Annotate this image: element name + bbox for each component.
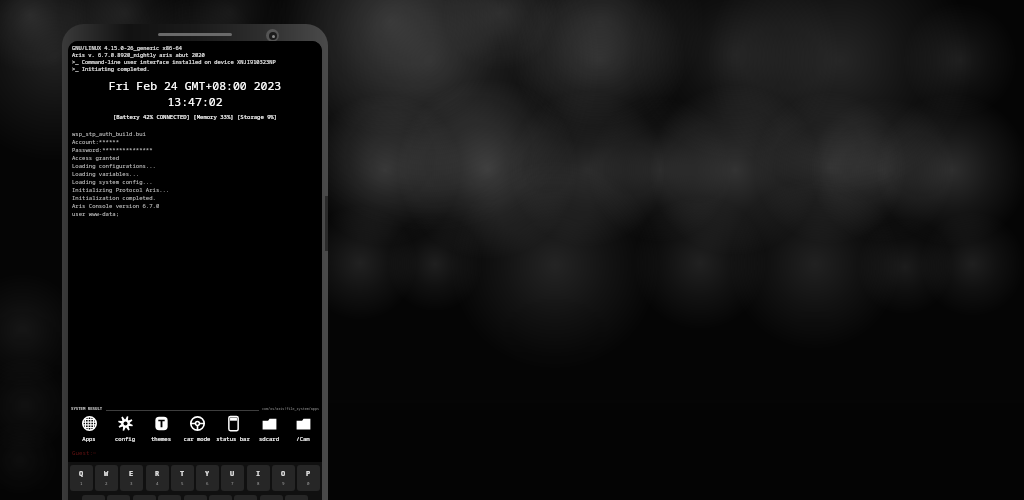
staticText: Aris v. 6.7.0.8920_nightly aris abut 202…	[72, 51, 205, 58]
staticText: 6	[206, 481, 209, 487]
staticText: 4	[156, 481, 159, 487]
staticText: U	[230, 469, 235, 479]
staticText: 5	[181, 481, 184, 487]
staticText: Aris Console version 6.7.0	[72, 202, 160, 210]
staticText: Y	[205, 469, 210, 479]
staticText: 3	[130, 481, 133, 487]
staticText: Loading variables...	[72, 170, 140, 178]
button[interactable]: status bar	[215, 415, 251, 443]
staticText: Fri Feb 24 GMT+08:00 2023	[68, 78, 322, 94]
staticText: 9	[282, 481, 285, 487]
staticText: I	[256, 469, 261, 479]
button[interactable]: W	[95, 465, 118, 491]
button[interactable]: car mode	[179, 415, 215, 443]
button[interactable]: sdcard	[251, 415, 287, 443]
staticText: Password:***************	[72, 146, 153, 154]
staticText: config	[107, 435, 143, 443]
button[interactable]: R	[146, 465, 169, 491]
button[interactable]: P	[297, 465, 320, 491]
staticText: E	[129, 469, 134, 479]
staticText: SYSTEM RESULT	[71, 406, 103, 411]
staticText: >_ Initiating completed.	[72, 65, 150, 72]
staticText: status bar	[215, 435, 251, 443]
button[interactable]: themes	[143, 415, 179, 443]
staticText: Initializing Protocol Aris...	[72, 186, 170, 194]
staticText: [Battery 42% CONNECTED] [Memory 33%] [St…	[68, 113, 322, 121]
button[interactable]: Apps	[71, 415, 107, 443]
staticText: Loading configurations...	[72, 162, 156, 170]
staticText: sdcard	[251, 435, 287, 443]
button[interactable]: /Cam	[287, 415, 319, 443]
button[interactable]: U	[221, 465, 244, 491]
button[interactable]: Y	[196, 465, 219, 491]
staticText: O	[281, 469, 286, 479]
staticText: wsp_stp_auth_build.bui	[72, 130, 146, 138]
staticText: car mode	[179, 435, 215, 443]
staticText: Loading system config...	[72, 178, 153, 186]
staticText: R	[155, 469, 160, 479]
staticText: P	[306, 469, 311, 479]
staticText: T	[180, 469, 185, 479]
staticText: Q	[79, 469, 84, 479]
staticText: Apps	[71, 435, 107, 443]
staticText: 1	[80, 481, 83, 487]
button[interactable]: config	[107, 415, 143, 443]
staticText: /Cam	[287, 435, 319, 443]
staticText: com/os/aris/file_system/apps	[262, 406, 319, 411]
staticText: Guest:~	[72, 449, 97, 457]
button[interactable]: Q	[70, 465, 93, 491]
staticText: 8	[257, 481, 260, 487]
staticText: Initialization completed.	[72, 194, 156, 202]
staticText: Access granted	[72, 154, 119, 162]
staticText: 0	[307, 481, 310, 487]
staticText: themes	[143, 435, 179, 443]
staticText: user www-data;	[72, 210, 119, 218]
staticText: W	[104, 469, 109, 479]
staticText: >_ Command-line user interface installed…	[72, 58, 276, 65]
button[interactable]: E	[120, 465, 143, 491]
staticText: 13:47:02	[68, 94, 322, 110]
button[interactable]: T	[171, 465, 194, 491]
staticText: 7	[231, 481, 234, 487]
staticText: 2	[105, 481, 108, 487]
button[interactable]: O	[272, 465, 295, 491]
button[interactable]: I	[247, 465, 270, 491]
staticText: Account:******	[72, 138, 119, 146]
staticText: GNU/LINUX 4.15.0-26_generic x86-64	[72, 44, 182, 51]
